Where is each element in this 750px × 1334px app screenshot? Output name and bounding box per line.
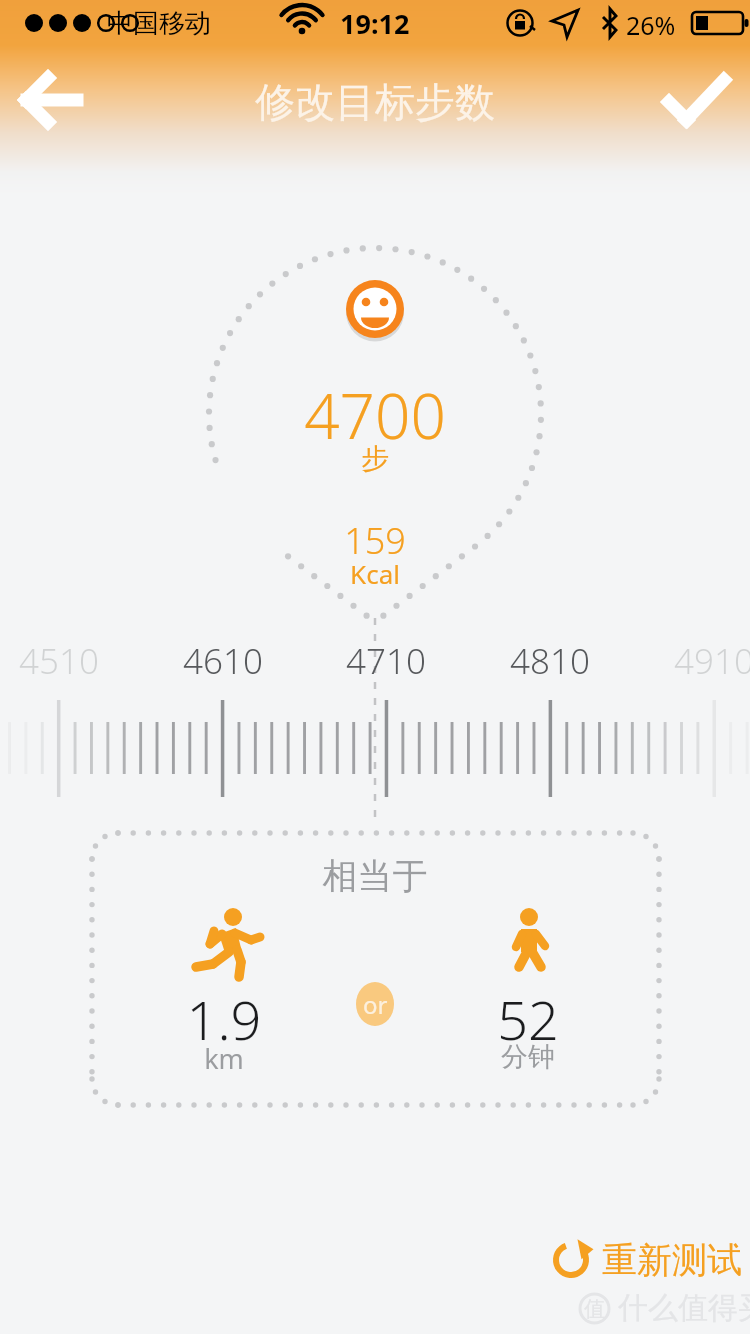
staticText: 4700 bbox=[0, 373, 750, 457]
staticText: 步 bbox=[0, 441, 750, 476]
staticText: 相当于 bbox=[0, 854, 750, 898]
staticText: 值 bbox=[584, 1296, 605, 1322]
button[interactable]: Confirm bbox=[656, 60, 736, 140]
button[interactable]: Back bbox=[12, 60, 92, 140]
staticText: 4810 bbox=[480, 637, 620, 685]
staticText: 1.9 bbox=[124, 982, 324, 1056]
staticText: Kcal bbox=[0, 556, 750, 591]
staticText: or bbox=[363, 988, 388, 1021]
staticText: 26% bbox=[626, 8, 676, 42]
staticText: 什么值得买 bbox=[618, 1289, 750, 1327]
staticText: 中国移动 bbox=[107, 7, 211, 40]
staticText: 19:12 bbox=[340, 5, 410, 42]
staticText: 4610 bbox=[153, 637, 293, 685]
staticText: 4910 bbox=[644, 637, 750, 685]
staticText: km bbox=[124, 1040, 324, 1077]
staticText: 重新测试 bbox=[602, 1238, 742, 1282]
staticText: 4510 bbox=[0, 637, 129, 685]
staticText: 4710 bbox=[316, 637, 456, 685]
staticText: 分钟 bbox=[428, 1040, 628, 1074]
staticText: 52 bbox=[428, 982, 628, 1056]
staticText: 修改目标步数 bbox=[255, 77, 495, 127]
button[interactable]: 重新测试 bbox=[548, 1230, 742, 1290]
staticText: 159 bbox=[0, 516, 750, 565]
